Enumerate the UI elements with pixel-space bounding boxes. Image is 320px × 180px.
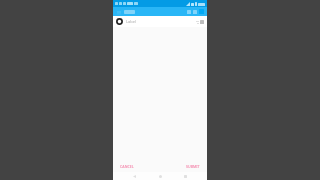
staticText: SUBMIT [186,164,200,169]
button[interactable] [124,10,135,14]
button[interactable]: CANCEL [118,163,136,170]
staticText: CANCEL [120,164,134,169]
button[interactable]: Filter [193,10,197,14]
button[interactable]: Navigation menu [116,9,122,15]
button[interactable]: Search [187,10,191,14]
button[interactable]: Label [113,16,207,27]
staticText: Label [126,19,137,24]
button[interactable]: Home [157,173,164,180]
button[interactable]: Recent apps [182,173,189,180]
button[interactable]: SUBMIT [184,163,202,170]
button[interactable]: Back [131,173,138,180]
